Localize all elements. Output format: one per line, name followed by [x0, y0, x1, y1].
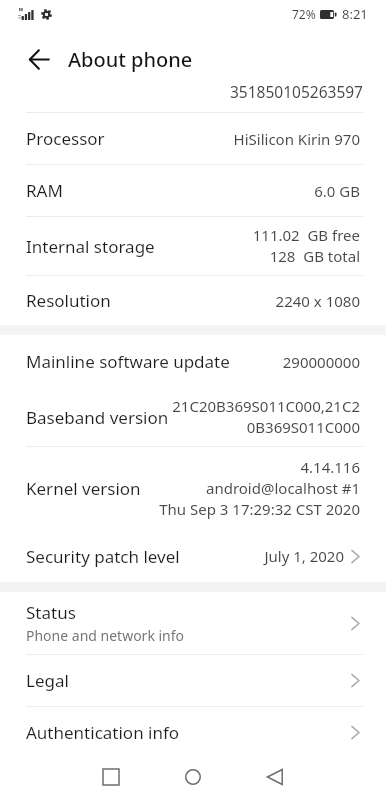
staticText: 111.02 GB free 128 GB total — [252, 225, 360, 267]
staticText: 2240 x 1080 — [275, 291, 360, 311]
staticText: Legal — [26, 669, 69, 692]
button[interactable]: Back — [249, 754, 301, 800]
staticText: 351850105263597 — [230, 86, 363, 102]
button[interactable]: Internal storage — [0, 217, 386, 275]
staticText: Internal storage — [26, 235, 155, 258]
staticText: HiSilicon Kirin 970 — [233, 129, 360, 149]
button[interactable]: Resolution — [0, 276, 386, 325]
button[interactable]: Baseband version — [0, 388, 386, 446]
staticText: July 1, 2020 — [264, 546, 344, 566]
staticText: About phone — [68, 46, 193, 73]
button[interactable]: Status — [0, 592, 386, 654]
button[interactable]: Recents — [85, 754, 137, 800]
button[interactable]: Legal — [0, 655, 386, 706]
staticText: 72% — [292, 6, 316, 22]
staticText: 4.14.116 android@localhost #1 Thu Sep 3 … — [159, 457, 360, 520]
staticText: 21C20B369S011C000,21C2 0B369S011C000 — [172, 396, 360, 438]
button[interactable]: Mainline software update — [0, 335, 386, 388]
staticText: RAM — [26, 179, 63, 202]
staticText: Processor — [26, 127, 105, 150]
staticText: Baseband version — [26, 406, 169, 429]
staticText: Status — [26, 601, 76, 624]
button[interactable]: Home — [167, 754, 219, 800]
button[interactable]: Navigate up — [16, 36, 62, 82]
staticText: Mainline software update — [26, 350, 230, 373]
staticText: Kernel version — [26, 477, 141, 500]
staticText: 8:21 — [342, 5, 368, 23]
staticText: 290000000 — [282, 352, 360, 372]
staticText: Resolution — [26, 289, 111, 312]
button[interactable]: Security patch level — [0, 530, 386, 582]
button[interactable]: RAM — [0, 165, 386, 216]
staticText: 6.0 GB — [314, 181, 360, 201]
staticText: Phone and network info — [26, 626, 185, 645]
button[interactable]: Authentication info — [0, 707, 386, 758]
button[interactable]: Processor — [0, 113, 386, 164]
button[interactable]: Kernel version — [0, 447, 386, 530]
staticText: Security patch level — [26, 545, 180, 568]
staticText: Authentication info — [26, 721, 180, 744]
